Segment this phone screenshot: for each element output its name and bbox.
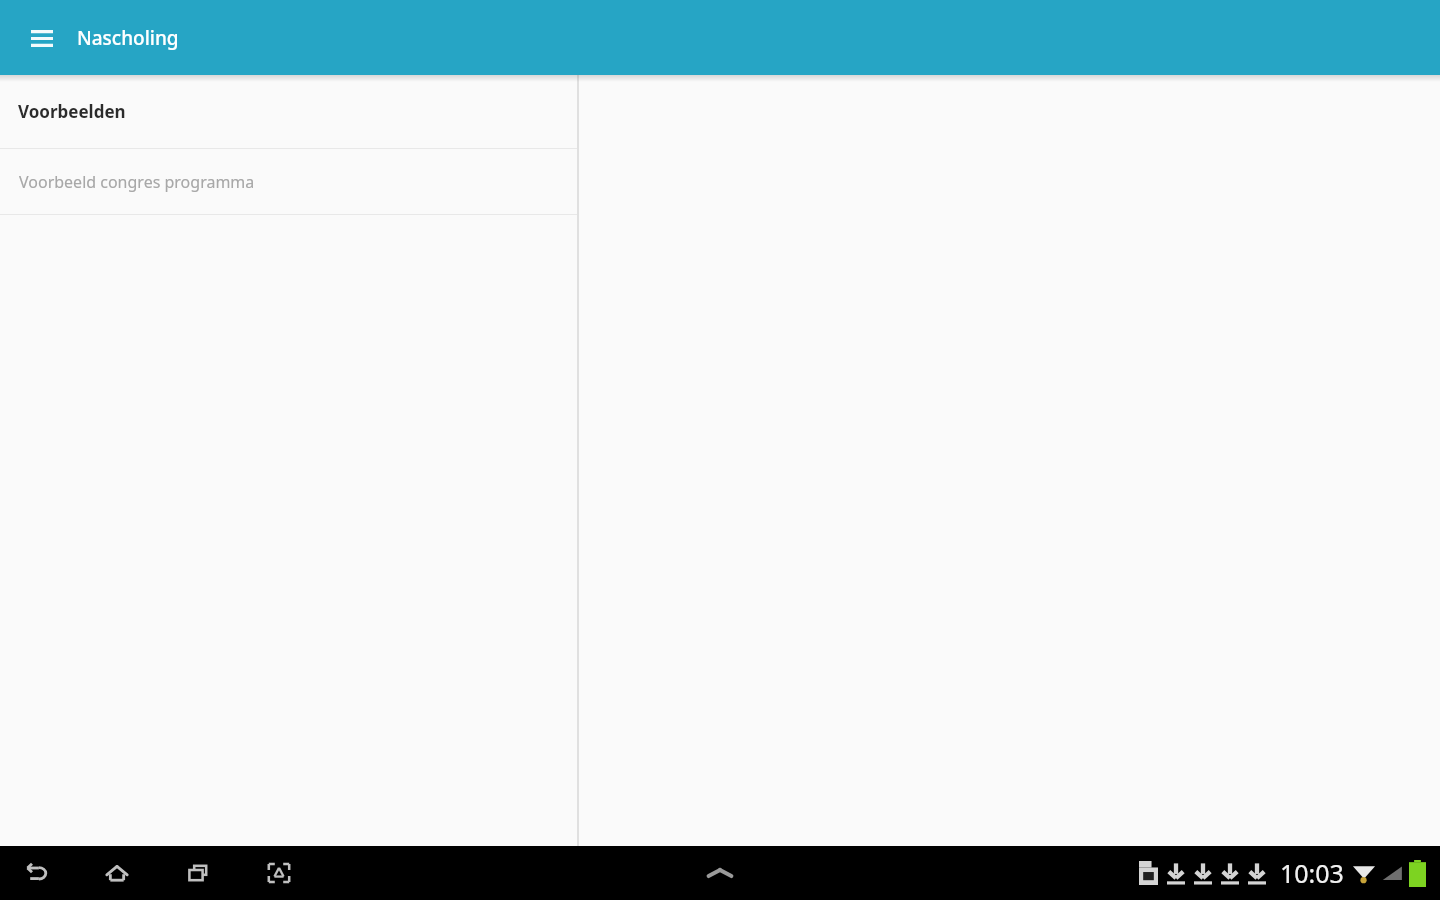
button[interactable]: Open navigation menu — [18, 14, 66, 62]
button[interactable]: Recent apps — [172, 846, 226, 900]
staticText: Nascholing — [77, 25, 179, 51]
button[interactable]: Back — [8, 846, 62, 900]
button[interactable]: Expand — [693, 846, 747, 900]
button[interactable]: Voorbeeld congres programma — [0, 149, 577, 214]
staticText: Voorbeelden — [18, 100, 126, 123]
button[interactable]: Voorbeelden — [0, 75, 577, 148]
button[interactable]: Home — [90, 846, 144, 900]
button[interactable]: Screenshot — [252, 846, 306, 900]
staticText: Voorbeeld congres programma — [19, 171, 255, 193]
staticText: 10:03 — [1280, 856, 1344, 890]
